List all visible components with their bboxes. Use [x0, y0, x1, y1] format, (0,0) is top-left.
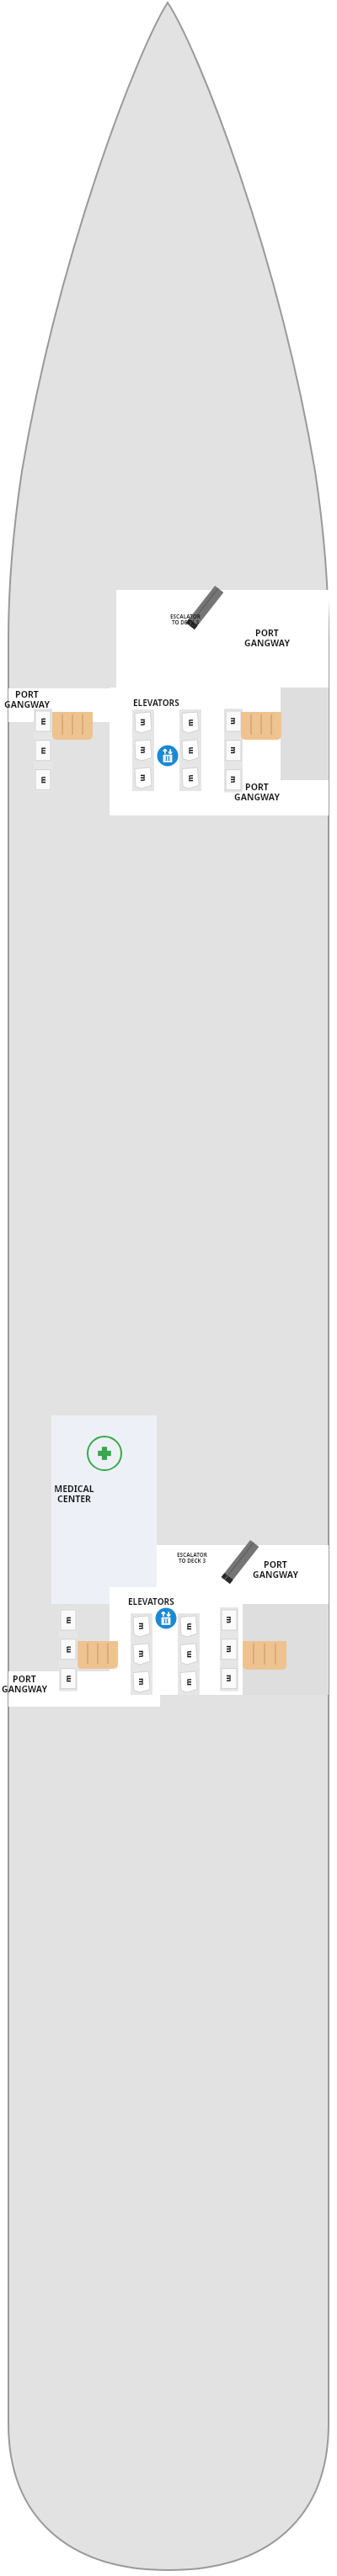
button[interactable]: Deck plan, deck 2	[0, 0, 337, 2576]
